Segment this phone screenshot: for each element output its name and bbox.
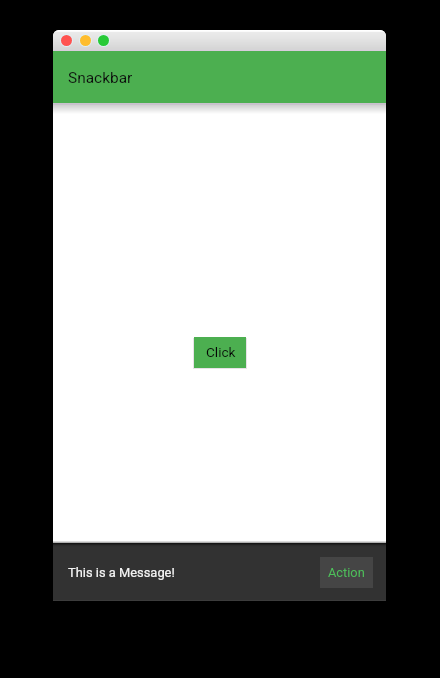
button[interactable]: Action — [320, 557, 373, 588]
button[interactable]: Click — [194, 337, 246, 368]
button[interactable]: Minimize — [79, 34, 92, 47]
staticText: Action — [328, 565, 365, 580]
button[interactable]: Close — [60, 34, 73, 47]
button[interactable]: Maximize — [97, 34, 110, 47]
staticText: Click — [206, 344, 236, 360]
staticText: Snackbar — [68, 69, 133, 87]
staticText: This is a Message! — [68, 565, 175, 580]
